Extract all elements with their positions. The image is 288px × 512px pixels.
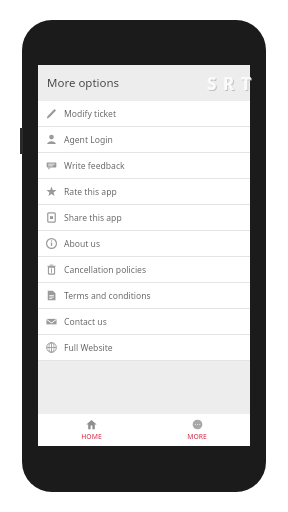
button[interactable]: About us — [38, 231, 250, 256]
button[interactable]: HOME — [38, 414, 144, 446]
button[interactable]: Modify ticket — [38, 101, 250, 126]
staticText: T — [241, 72, 251, 95]
staticText: Modify ticket — [64, 108, 117, 120]
staticText: R — [223, 72, 235, 95]
staticText: MORE — [187, 432, 207, 441]
staticText: S — [207, 72, 217, 95]
staticText: R — [224, 73, 236, 96]
staticText: Cancellation policies — [64, 264, 147, 276]
staticText: Share this app — [64, 212, 122, 224]
staticText: S — [208, 73, 218, 96]
staticText: Terms and conditions — [64, 290, 151, 302]
staticText: About us — [64, 238, 101, 250]
staticText: HOME — [81, 432, 102, 441]
staticText: More options — [47, 75, 120, 91]
button[interactable]: Agent Login — [38, 127, 250, 152]
button[interactable]: MORE — [144, 414, 250, 446]
button[interactable]: Terms and conditions — [38, 283, 250, 308]
button[interactable]: Full Website — [38, 335, 250, 360]
staticText: Rate this app — [64, 186, 117, 198]
button[interactable]: Write feedback — [38, 153, 250, 178]
button[interactable]: Share this app — [38, 205, 250, 230]
staticText: Agent Login — [64, 134, 113, 146]
staticText: T — [242, 73, 252, 96]
staticText: Contact us — [64, 316, 107, 328]
button[interactable]: Contact us — [38, 309, 250, 334]
button[interactable]: Cancellation policies — [38, 257, 250, 282]
staticText: Full Website — [64, 342, 113, 354]
button[interactable]: Rate this app — [38, 179, 250, 204]
staticText: Write feedback — [64, 160, 125, 172]
